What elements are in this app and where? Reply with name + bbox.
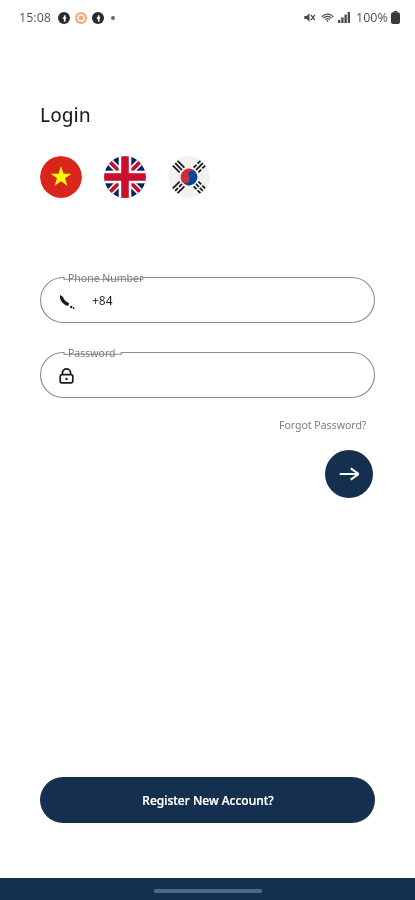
staticText: Login [40, 102, 91, 128]
staticText: Forgot Password? [279, 418, 367, 432]
staticText: Password [68, 346, 116, 360]
button[interactable]: Continue [325, 450, 373, 498]
button[interactable]: Forgot Password? [275, 415, 371, 435]
button[interactable]: English [104, 156, 146, 198]
button[interactable]: Vietnamese [40, 156, 82, 198]
button[interactable]: Register New Account? [40, 777, 375, 823]
button[interactable]: Phone Number [40, 277, 375, 323]
staticText: 100% [356, 9, 388, 26]
button[interactable]: Password [40, 352, 375, 398]
staticText: 15:08 [19, 9, 51, 26]
staticText: +84 [92, 292, 113, 308]
staticText: Phone Number [68, 271, 144, 285]
staticText: Register New Account? [142, 792, 274, 808]
button[interactable]: Korean [168, 156, 210, 198]
